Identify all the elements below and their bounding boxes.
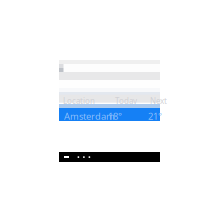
- button[interactable]: Search: [59, 64, 160, 72]
- staticText: Location: [63, 96, 95, 106]
- staticText: 18°: [108, 110, 122, 122]
- button[interactable]: Amsterdam: [59, 108, 160, 121]
- staticText: 21°: [148, 110, 162, 122]
- staticText: Amsterdam: [64, 110, 115, 122]
- staticText: Next: [150, 96, 167, 106]
- staticText: Today: [115, 96, 137, 106]
